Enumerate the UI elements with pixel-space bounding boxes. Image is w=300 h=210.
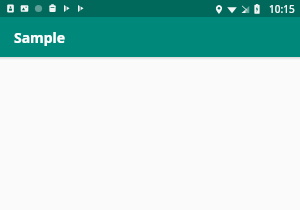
staticText: 10:15 xyxy=(269,2,295,16)
button[interactable]: Sample xyxy=(0,17,300,57)
staticText: Sample xyxy=(14,28,66,47)
